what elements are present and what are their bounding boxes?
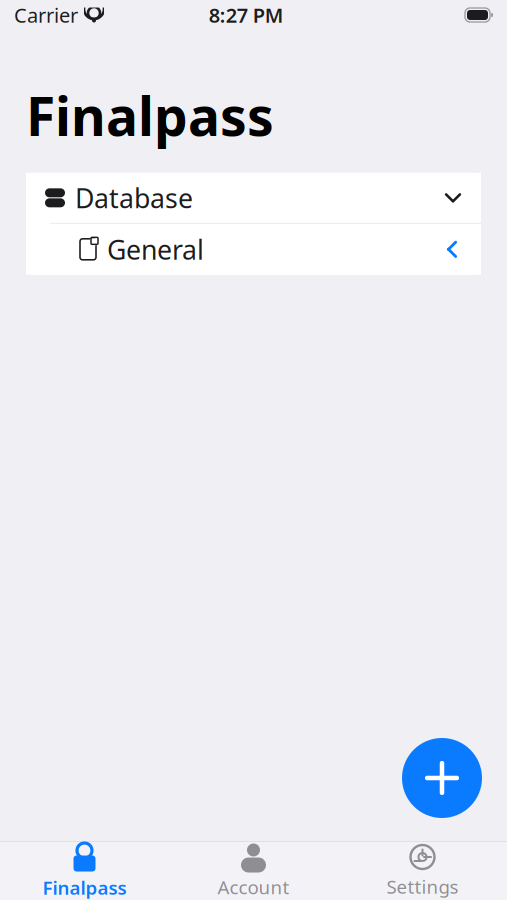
button[interactable]: Finalpass: [0, 842, 169, 900]
button[interactable]: Settings: [338, 842, 507, 900]
staticText: Carrier: [14, 2, 78, 28]
button[interactable]: Database: [26, 173, 481, 223]
button[interactable]: General: [26, 224, 481, 275]
button[interactable]: Account: [169, 842, 338, 900]
staticText: Settings: [386, 874, 458, 899]
staticText: Account: [217, 874, 289, 899]
staticText: 8:27 PM: [209, 2, 284, 28]
staticText: General: [107, 232, 204, 267]
staticText: Finalpass: [26, 80, 274, 151]
staticText: Database: [75, 180, 193, 215]
staticText: Finalpass: [42, 875, 126, 900]
button[interactable]: Add: [402, 738, 482, 818]
